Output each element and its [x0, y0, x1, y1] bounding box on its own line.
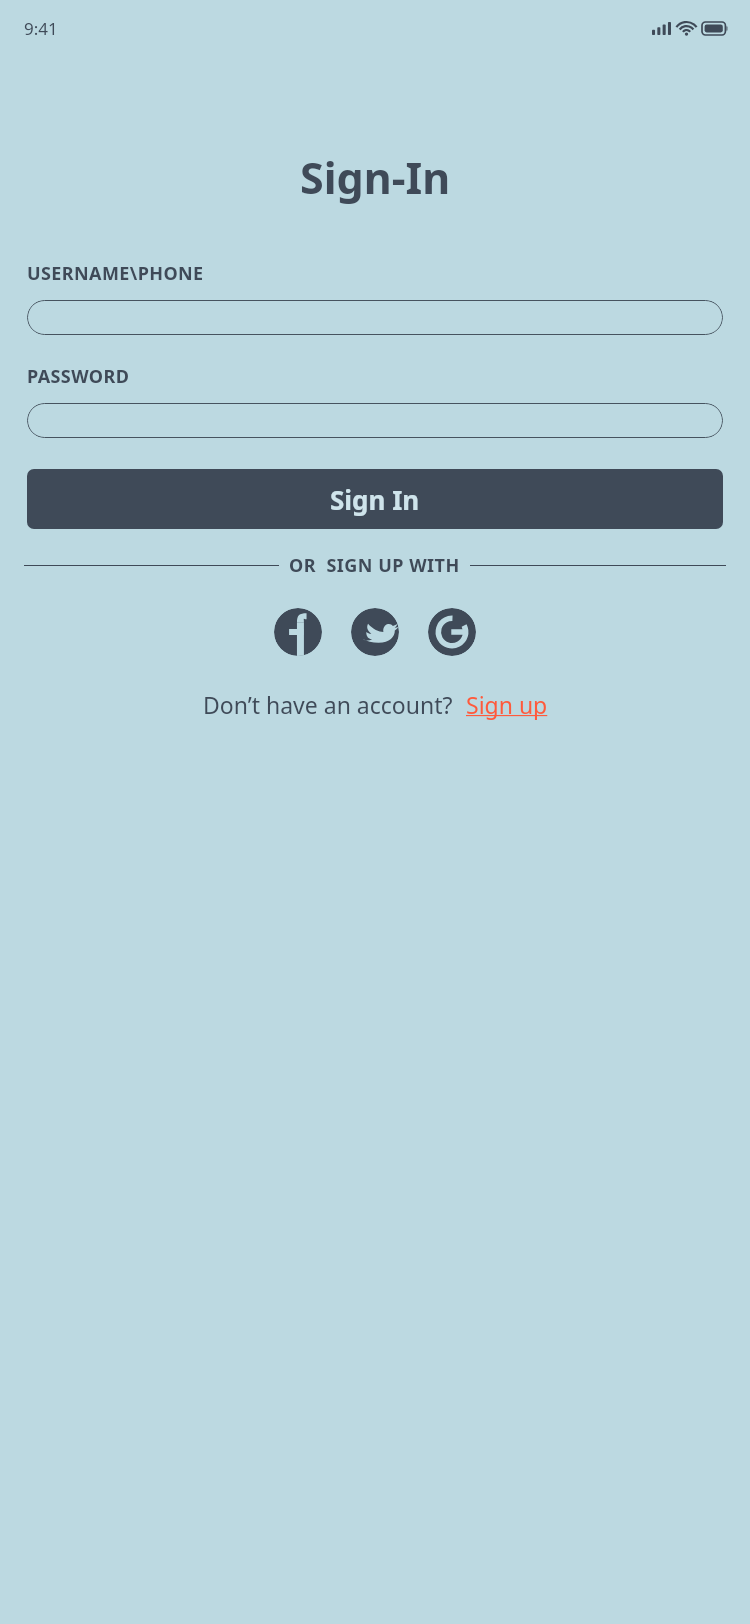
staticText: Sign In [330, 482, 420, 517]
staticText: USERNAME\PHONE [27, 261, 204, 286]
button[interactable]: Sign In [27, 469, 723, 529]
button[interactable]: Sign up with Twitter [351, 608, 399, 656]
staticText: Don’t have an account? [203, 689, 453, 720]
button[interactable] [27, 403, 723, 438]
staticText: Sign-In [300, 148, 451, 207]
staticText: PASSWORD [27, 364, 130, 389]
staticText: Sign up [466, 689, 548, 720]
staticText: 9:41 [24, 17, 58, 40]
staticText: OR SIGN UP WITH [289, 553, 460, 578]
button[interactable]: Sign up with Google [428, 608, 476, 656]
button[interactable]: Sign up [466, 689, 548, 720]
button[interactable] [27, 300, 723, 335]
button[interactable]: Sign up with Facebook [274, 608, 322, 656]
